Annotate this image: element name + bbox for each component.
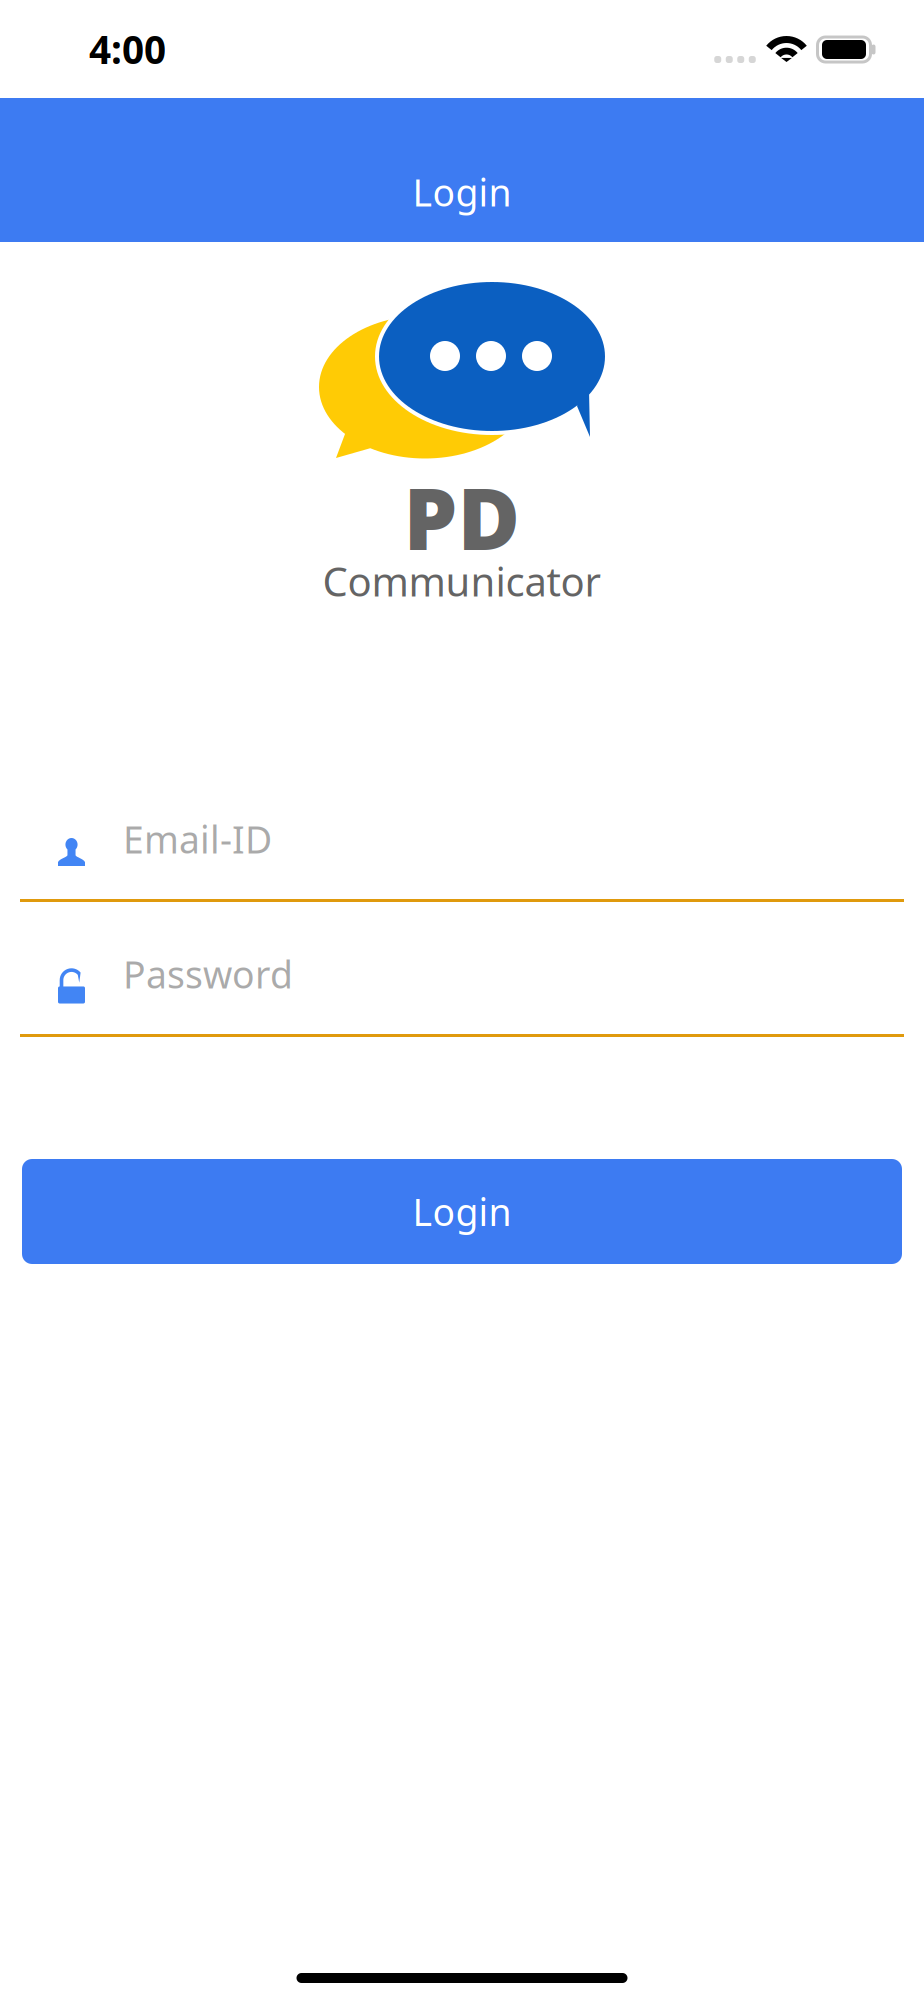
- staticText: 4:00: [89, 23, 166, 75]
- staticText: Login: [412, 167, 511, 217]
- staticText: Communicator: [322, 554, 601, 607]
- staticText: Password: [123, 949, 293, 999]
- staticText: Login: [412, 1187, 511, 1236]
- staticText: Email-ID: [123, 814, 272, 864]
- button[interactable]: Login: [22, 1159, 902, 1264]
- staticText: PD: [403, 460, 520, 574]
